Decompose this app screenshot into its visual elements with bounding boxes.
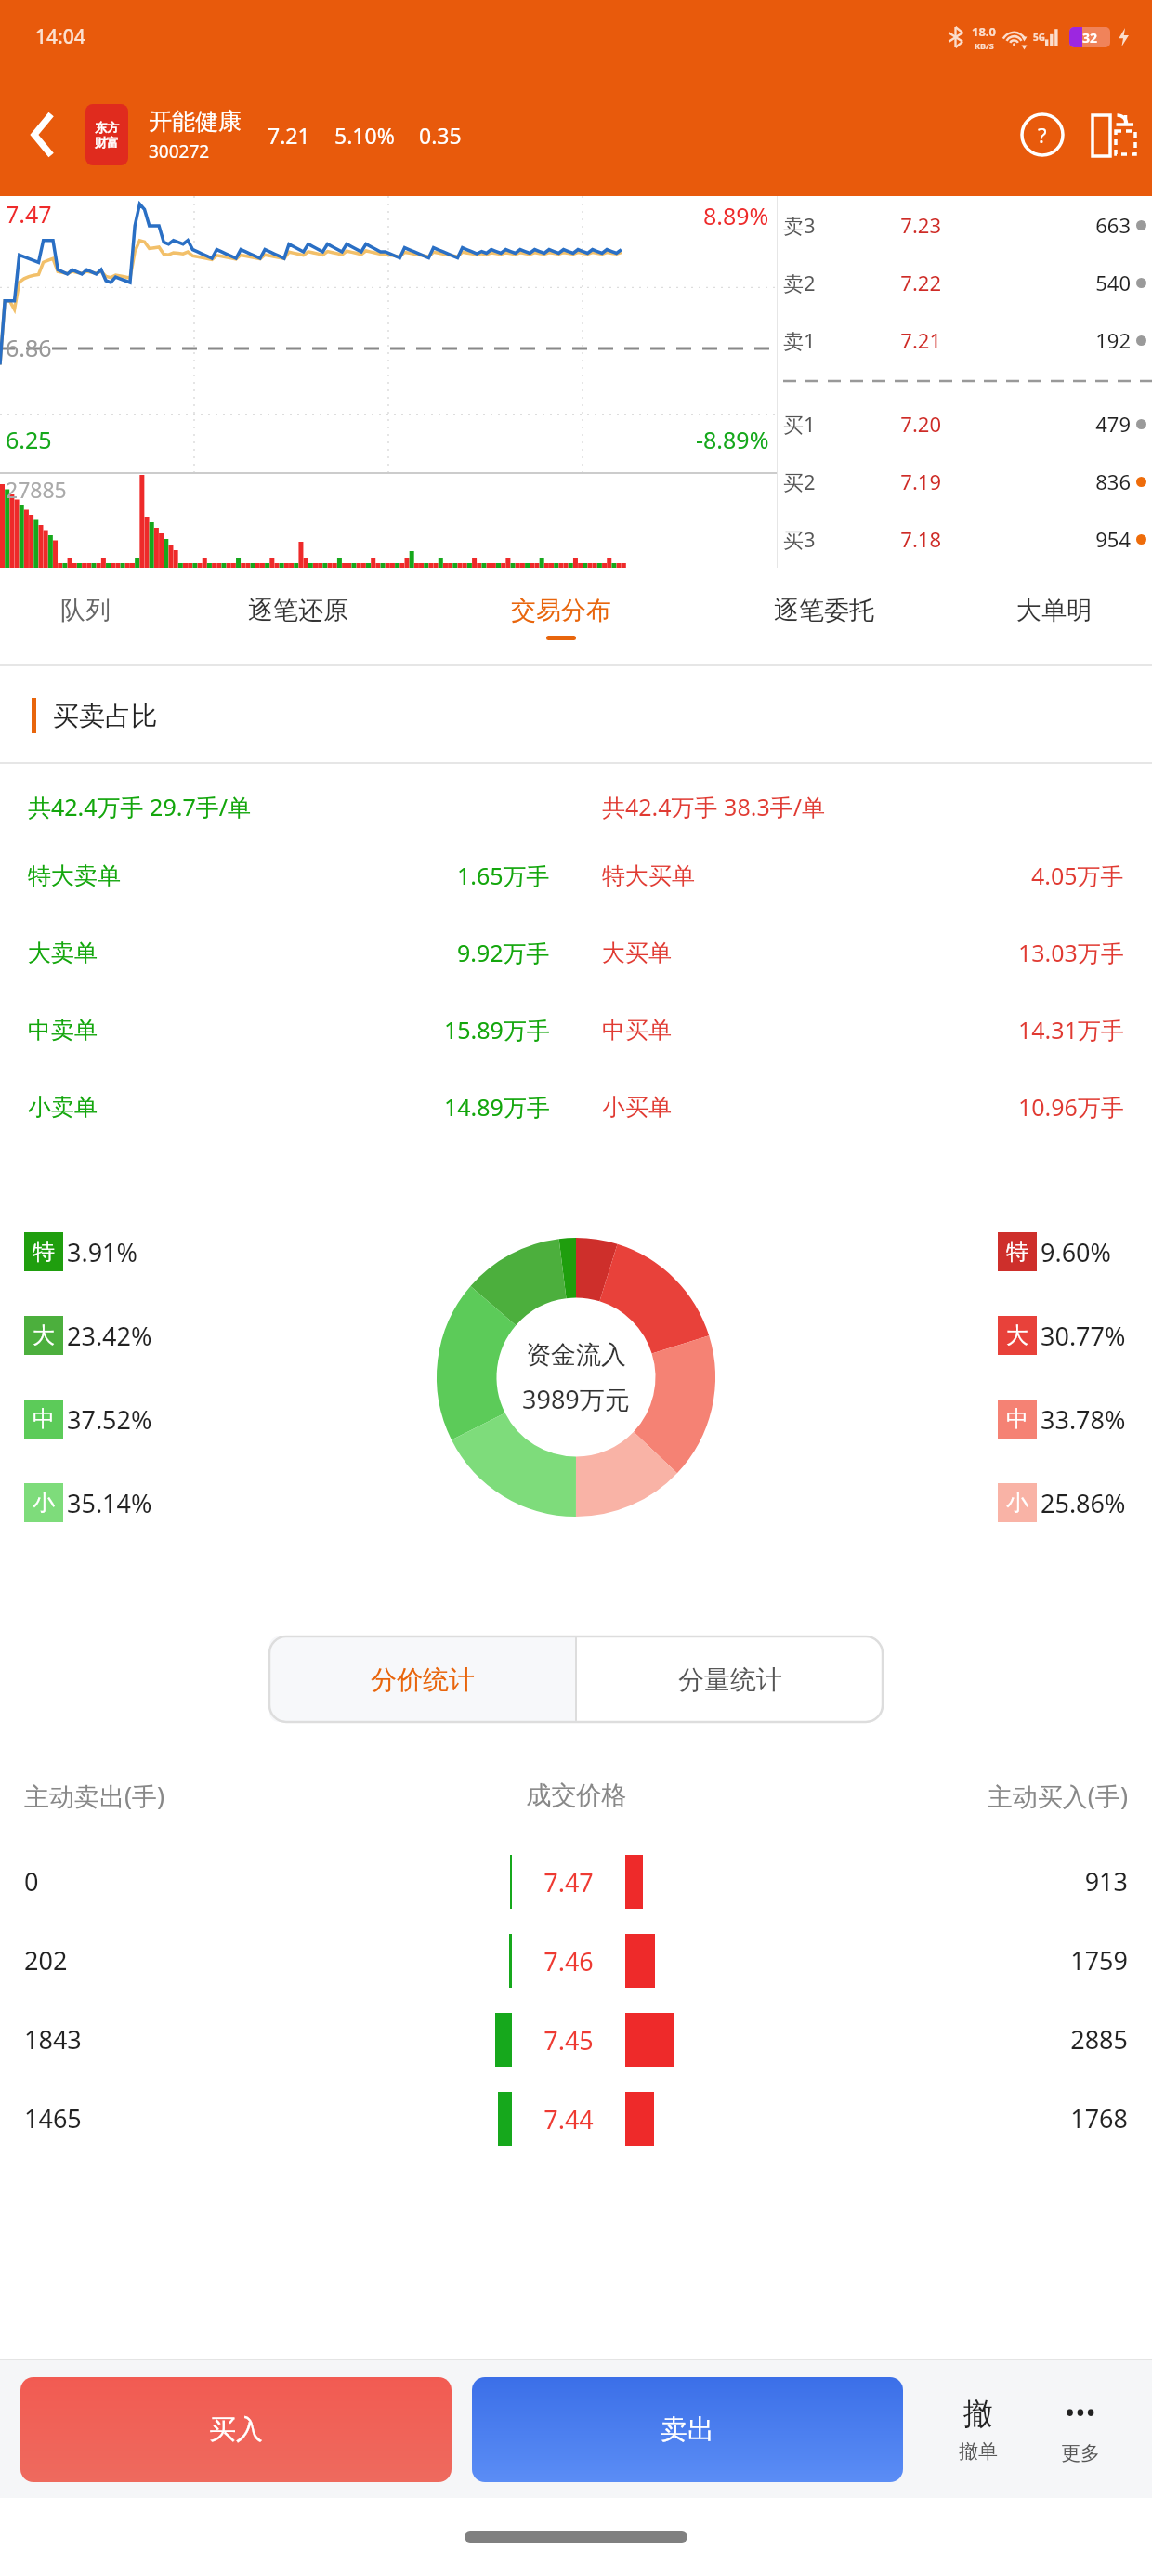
- button[interactable]: Split screen: [1076, 97, 1152, 173]
- button[interactable]: 交易分布: [429, 568, 692, 666]
- button[interactable]: •••: [1029, 2360, 1132, 2498]
- button[interactable]: 大: [24, 1316, 152, 1355]
- button[interactable]: 中: [24, 1400, 152, 1439]
- button[interactable]: 逐笔委托: [692, 568, 955, 666]
- staticText: 分量统计: [678, 1663, 782, 1696]
- staticText: 836: [941, 467, 1131, 495]
- staticText: 卖2: [783, 269, 852, 296]
- button[interactable]: 1465: [0, 2079, 1152, 2158]
- staticText: 更多: [1061, 2441, 1100, 2465]
- staticText: 中: [1006, 1405, 1028, 1433]
- staticText: 小: [33, 1489, 55, 1517]
- staticText: 7.20: [852, 410, 941, 438]
- button[interactable]: 卖3: [783, 196, 1152, 254]
- staticText: 队列: [60, 595, 111, 626]
- staticText: 成交价格: [385, 1780, 768, 1811]
- staticText: 中: [33, 1405, 55, 1433]
- staticText: 0: [24, 1864, 380, 1899]
- staticText: 小卖单: [28, 1093, 98, 1122]
- staticText: 663: [941, 211, 1131, 239]
- button[interactable]: 小: [998, 1483, 1126, 1522]
- staticText: 共42.4万手 29.7手/单: [28, 791, 576, 822]
- staticText: 大卖单: [28, 939, 98, 967]
- button[interactable]: 逐笔还原: [167, 568, 429, 666]
- button[interactable]: 小: [24, 1483, 152, 1522]
- staticText: 特: [1006, 1238, 1028, 1266]
- staticText: 主动买入(手): [768, 1779, 1128, 1813]
- staticText: 买3: [783, 525, 852, 553]
- staticText: 10.96万手: [1018, 1091, 1124, 1123]
- staticText: 特: [33, 1238, 55, 1266]
- staticText: 主动卖出(手): [24, 1779, 385, 1813]
- button[interactable]: Help: [1009, 101, 1076, 168]
- staticText: 32: [1082, 29, 1098, 46]
- staticText: 3989万元: [522, 1382, 630, 1416]
- button[interactable]: 1843: [0, 2000, 1152, 2079]
- button[interactable]: 大: [998, 1316, 1126, 1355]
- staticText: 0.35: [419, 121, 462, 150]
- staticText: 开能健康: [149, 107, 242, 136]
- staticText: 特大买单: [602, 861, 695, 890]
- staticText: 3.91%: [67, 1235, 138, 1269]
- button[interactable]: 卖出: [472, 2377, 903, 2482]
- staticText: 小买单: [602, 1093, 672, 1122]
- staticText: 1759: [772, 1943, 1128, 1978]
- button[interactable]: 买3: [783, 510, 1152, 568]
- button[interactable]: 买入: [20, 2377, 452, 2482]
- button[interactable]: 卖1: [783, 311, 1152, 369]
- staticText: 财富: [95, 135, 119, 150]
- staticText: -8.89%: [696, 424, 769, 455]
- button[interactable]: 特: [24, 1232, 138, 1271]
- button[interactable]: 买2: [783, 453, 1152, 510]
- staticText: 540: [941, 269, 1131, 296]
- button[interactable]: 0: [0, 1842, 1152, 1921]
- button[interactable]: 买1: [783, 395, 1152, 453]
- button[interactable]: Back: [0, 73, 85, 196]
- staticText: 7.19: [852, 467, 941, 495]
- staticText: 逐笔还原: [248, 595, 348, 626]
- staticText: 954: [941, 525, 1131, 553]
- staticText: 7.45: [527, 2023, 610, 2057]
- staticText: 东方: [95, 120, 119, 135]
- staticText: 4.05万手: [1031, 860, 1124, 891]
- button[interactable]: 分量统计: [577, 1636, 883, 1722]
- button[interactable]: 中: [998, 1400, 1126, 1439]
- staticText: 7.23: [852, 211, 941, 239]
- staticText: 7.18: [852, 525, 941, 553]
- button[interactable]: 分价统计: [269, 1636, 575, 1722]
- staticText: 7.21: [268, 121, 310, 150]
- staticText: 8.89%: [703, 200, 769, 231]
- staticText: 13.03万手: [1018, 937, 1124, 968]
- staticText: 1768: [772, 2101, 1128, 2136]
- staticText: 6.25: [6, 424, 52, 455]
- staticText: 中卖单: [28, 1016, 98, 1045]
- staticText: 交易分布: [511, 595, 611, 626]
- staticText: 7.22: [852, 269, 941, 296]
- staticText: 202: [24, 1943, 380, 1978]
- staticText: 25.86%: [1041, 1486, 1126, 1520]
- staticText: •••: [1065, 2394, 1096, 2432]
- staticText: 5G: [1033, 31, 1045, 44]
- staticText: 18.0: [972, 23, 996, 40]
- button[interactable]: 卖2: [783, 254, 1152, 311]
- staticText: ?: [1038, 121, 1047, 149]
- staticText: 27885: [6, 475, 67, 504]
- staticText: 30.77%: [1041, 1319, 1126, 1353]
- staticText: 15.89万手: [444, 1014, 550, 1045]
- staticText: 7.47: [6, 198, 52, 230]
- button[interactable]: 特: [998, 1232, 1112, 1271]
- staticText: 479: [941, 410, 1131, 438]
- staticText: 撤: [963, 2395, 993, 2432]
- staticText: 大买单: [602, 939, 672, 967]
- staticText: 7.47: [527, 1865, 610, 1899]
- button[interactable]: 大单明: [955, 568, 1152, 666]
- button[interactable]: 撤: [927, 2360, 1029, 2498]
- staticText: 中买单: [602, 1016, 672, 1045]
- staticText: 14.31万手: [1018, 1014, 1124, 1045]
- staticText: 6.86: [6, 332, 52, 363]
- button[interactable]: 队列: [4, 568, 167, 666]
- staticText: 7.46: [527, 1944, 610, 1978]
- staticText: 买2: [783, 467, 852, 495]
- staticText: 7.44: [527, 2102, 610, 2136]
- button[interactable]: 202: [0, 1921, 1152, 2000]
